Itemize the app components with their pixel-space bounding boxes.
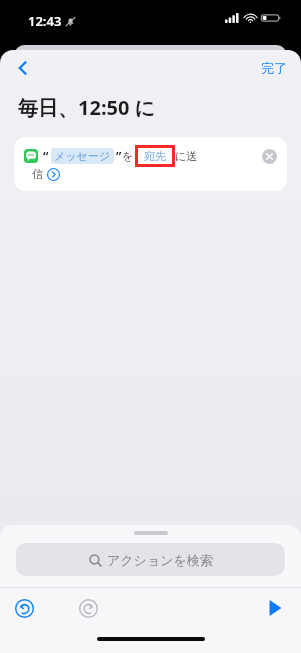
staticText: “ — [43, 148, 49, 164]
staticText: アクションを検索 — [107, 552, 213, 568]
staticText: 完了 — [261, 60, 287, 76]
button[interactable]: Undo — [8, 592, 40, 624]
button[interactable]: Back — [6, 51, 40, 85]
button[interactable]: Redo — [72, 592, 104, 624]
button[interactable]: Remove action — [262, 149, 277, 164]
staticText: 宛先 — [144, 149, 166, 163]
button[interactable]: Run — [259, 592, 291, 624]
button[interactable]: “ — [14, 137, 287, 191]
staticText: ” — [116, 148, 122, 164]
staticText: 毎日、12:50 に — [18, 94, 156, 121]
staticText: 12:43 — [28, 12, 62, 30]
staticText: を — [122, 149, 134, 163]
staticText: 信 — [32, 167, 43, 181]
staticText: に送 — [175, 149, 198, 163]
staticText: メッセージ — [54, 149, 111, 163]
button[interactable]: アクションを検索 — [16, 543, 285, 576]
button[interactable]: 完了 — [257, 56, 291, 80]
